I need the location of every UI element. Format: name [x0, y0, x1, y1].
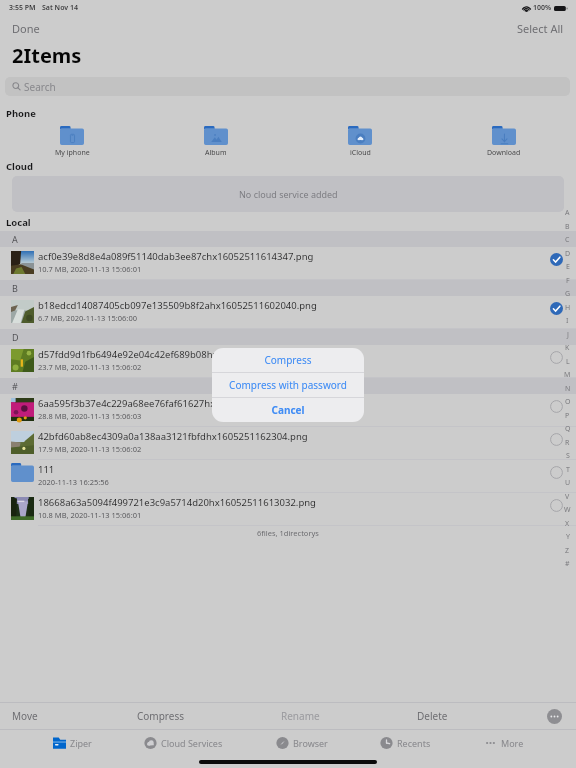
button[interactable]: Select item: [548, 497, 564, 513]
button[interactable]: Cancel: [212, 398, 364, 422]
staticText: O: [565, 397, 571, 407]
button[interactable]: S: [561, 449, 574, 462]
button[interactable]: b18edcd14087405cb097e135509b8f2ahx160525…: [0, 296, 576, 329]
button[interactable]: Browser: [276, 730, 328, 756]
button[interactable]: Select item: [548, 349, 564, 365]
staticText: Compress: [264, 353, 312, 367]
button[interactable]: V: [561, 490, 574, 503]
staticText: 2020-11-13 16:25:56: [38, 477, 109, 487]
staticText: X: [565, 519, 570, 529]
staticText: 18668a63a5094f499721e3c9a5714d20hx160525…: [38, 496, 316, 509]
button[interactable]: F: [561, 274, 574, 287]
staticText: Y: [566, 532, 570, 542]
button[interactable]: X: [561, 517, 574, 530]
staticText: Cloud: [6, 160, 34, 173]
button[interactable]: Select item: [548, 398, 564, 414]
button[interactable]: Album: [144, 126, 288, 158]
staticText: Q: [565, 424, 571, 434]
staticText: Rename: [281, 709, 320, 723]
button[interactable]: C: [561, 233, 574, 246]
button[interactable]: M: [561, 368, 574, 381]
button[interactable]: I: [561, 314, 574, 327]
button[interactable]: Move: [6, 703, 44, 729]
staticText: C: [565, 235, 570, 245]
button[interactable]: O: [561, 395, 574, 408]
button[interactable]: d57fdd9d1fb6494e92e04c42ef689b08hx160525…: [0, 345, 576, 378]
button[interactable]: Ziper: [53, 730, 92, 756]
button[interactable]: E: [561, 260, 574, 273]
button[interactable]: R: [561, 436, 574, 449]
button[interactable]: Compress: [131, 703, 191, 729]
button[interactable]: 111: [0, 460, 576, 493]
staticText: Select All: [517, 21, 564, 33]
staticText: Z: [565, 546, 570, 556]
staticText: My iphone: [55, 148, 90, 158]
button[interactable]: More: [484, 730, 524, 756]
button[interactable]: Select All: [505, 17, 576, 37]
staticText: 23.7 MB, 2020-11-13 15:06:02: [38, 362, 142, 372]
button[interactable]: Select item: [548, 251, 564, 267]
button[interactable]: N: [561, 382, 574, 395]
button[interactable]: Rename: [275, 703, 326, 729]
staticText: More: [501, 737, 524, 749]
button[interactable]: A: [561, 206, 574, 219]
button[interactable]: Recents: [380, 730, 431, 756]
staticText: acf0e39e8d8e4a089f51140dab3ee87chx160525…: [38, 250, 314, 263]
staticText: E: [566, 262, 570, 272]
staticText: iCloud: [350, 148, 371, 158]
staticText: I: [566, 316, 569, 326]
button[interactable]: #: [561, 557, 574, 570]
button[interactable]: 42bfd60ab8ec4309a0a138aa3121fbfdhx160525…: [0, 427, 576, 460]
button[interactable]: B: [561, 220, 574, 233]
staticText: Sat Nov 14: [42, 3, 78, 13]
button[interactable]: Select item: [548, 464, 564, 480]
staticText: R: [565, 438, 570, 448]
button[interactable]: Cloud Services: [144, 730, 223, 756]
button[interactable]: U: [561, 476, 574, 489]
staticText: 111: [38, 463, 55, 476]
button[interactable]: Select item: [548, 431, 564, 447]
staticText: Browser: [293, 737, 328, 749]
button[interactable]: P: [561, 409, 574, 422]
staticText: 6files, 1directorys: [257, 528, 319, 538]
staticText: 17.9 MB, 2020-11-13 15:06:02: [38, 444, 142, 454]
staticText: A: [565, 208, 570, 218]
button[interactable]: Y: [561, 530, 574, 543]
button[interactable]: Q: [561, 422, 574, 435]
staticText: S: [566, 451, 570, 461]
button[interactable]: L: [561, 355, 574, 368]
button[interactable]: Z: [561, 544, 574, 557]
staticText: Album: [205, 148, 227, 158]
staticText: 42bfd60ab8ec4309a0a138aa3121fbfdhx160525…: [38, 430, 308, 443]
button[interactable]: G: [561, 287, 574, 300]
button[interactable]: D: [561, 247, 574, 260]
button[interactable]: H: [561, 301, 574, 314]
button[interactable]: W: [561, 503, 574, 516]
staticText: 6.7 MB, 2020-11-13 15:06:00: [38, 313, 137, 323]
staticText: Recents: [397, 737, 431, 749]
button[interactable]: 18668a63a5094f499721e3c9a5714d20hx160525…: [0, 493, 576, 526]
staticText: W: [564, 505, 571, 515]
button[interactable]: 6aa595f3b37e4c229a68ee76faf61627hx160525…: [0, 394, 576, 427]
button[interactable]: Delete: [411, 703, 454, 729]
button[interactable]: Select item: [548, 300, 564, 316]
button[interactable]: Compress: [212, 348, 364, 372]
button[interactable]: T: [561, 463, 574, 476]
button[interactable]: Search: [5, 77, 570, 96]
button[interactable]: Done: [0, 17, 52, 37]
staticText: U: [565, 478, 571, 488]
staticText: Ziper: [70, 737, 92, 749]
button[interactable]: J: [561, 328, 574, 341]
button[interactable]: Compress with password: [212, 373, 364, 397]
button[interactable]: More options: [544, 706, 565, 727]
button[interactable]: Download: [432, 126, 576, 158]
staticText: M: [564, 370, 571, 380]
staticText: No cloud service added: [239, 188, 338, 200]
button[interactable]: K: [561, 341, 574, 354]
button[interactable]: My iphone: [0, 126, 144, 158]
staticText: b18edcd14087405cb097e135509b8f2ahx160525…: [38, 299, 317, 312]
staticText: K: [565, 343, 570, 353]
button[interactable]: acf0e39e8d8e4a089f51140dab3ee87chx160525…: [0, 247, 576, 280]
button[interactable]: iCloud: [288, 126, 432, 158]
staticText: Phone: [6, 107, 36, 120]
